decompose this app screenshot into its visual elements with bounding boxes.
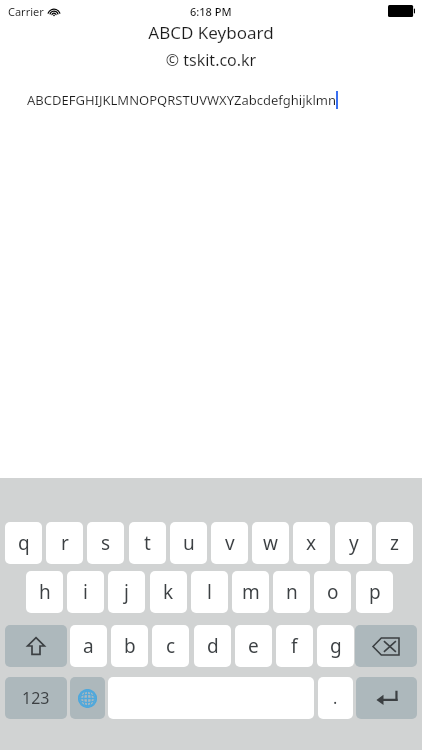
staticText: d	[207, 633, 219, 659]
staticText: h	[39, 579, 51, 605]
staticText: s	[101, 530, 111, 556]
button[interactable]: y	[335, 522, 372, 564]
button[interactable]: w	[252, 522, 289, 564]
button[interactable]: n	[273, 571, 310, 613]
staticText: a	[83, 633, 94, 659]
staticText: f	[291, 633, 298, 659]
staticText: x	[306, 530, 317, 556]
button[interactable]: s	[87, 522, 124, 564]
button[interactable]: .	[318, 677, 353, 719]
staticText: 6:18 PM	[190, 4, 232, 19]
staticText: m	[242, 579, 260, 605]
button[interactable]: l	[191, 571, 228, 613]
staticText: 123	[22, 687, 50, 709]
staticText: c	[166, 633, 176, 659]
button[interactable]: Next keyboard	[70, 677, 105, 719]
button[interactable]: o	[314, 571, 351, 613]
staticText: o	[327, 579, 339, 605]
staticText: j	[124, 579, 129, 605]
staticText: u	[183, 530, 195, 556]
button[interactable]: Numbers	[5, 677, 67, 719]
button[interactable]: m	[232, 571, 269, 613]
staticText: b	[124, 633, 136, 659]
staticText: ABCD Keyboard	[0, 21, 422, 44]
button[interactable]: u	[170, 522, 207, 564]
staticText: i	[83, 579, 88, 605]
staticText: © tskit.co.kr	[0, 49, 422, 71]
button[interactable]: b	[111, 625, 148, 667]
staticText: q	[18, 530, 30, 556]
staticText: z	[390, 530, 399, 556]
staticText: n	[286, 579, 298, 605]
staticText: r	[61, 530, 69, 556]
button[interactable]: Shift	[5, 625, 67, 667]
button[interactable]: x	[293, 522, 330, 564]
button[interactable]: t	[129, 522, 166, 564]
button[interactable]: g	[317, 625, 354, 667]
button[interactable]: e	[235, 625, 272, 667]
staticText: e	[248, 633, 259, 659]
button[interactable]: Return	[356, 677, 417, 719]
staticText: g	[330, 633, 342, 659]
staticText: Carrier	[8, 4, 44, 19]
button[interactable]: a	[70, 625, 107, 667]
staticText: p	[369, 579, 381, 605]
staticText: .	[333, 687, 338, 709]
staticText: y	[349, 530, 359, 556]
button[interactable]: p	[356, 571, 393, 613]
button[interactable]: h	[26, 571, 63, 613]
button[interactable]: v	[211, 522, 248, 564]
staticText: l	[207, 579, 212, 605]
button[interactable]: q	[5, 522, 42, 564]
button[interactable]: j	[108, 571, 145, 613]
button[interactable]: i	[67, 571, 104, 613]
staticText: t	[144, 530, 151, 556]
staticText: k	[163, 579, 174, 605]
button[interactable]: Backspace	[355, 625, 417, 667]
staticText: v	[225, 530, 235, 556]
button[interactable]: c	[152, 625, 189, 667]
button[interactable]: k	[150, 571, 187, 613]
button[interactable]: r	[46, 522, 83, 564]
button[interactable]: d	[194, 625, 231, 667]
staticText: w	[263, 530, 278, 556]
button[interactable]: z	[376, 522, 413, 564]
staticText: ABCDEFGHIJKLMNOPQRSTUVWXYZabcdefghijklmn	[27, 91, 336, 109]
button[interactable]: f	[276, 625, 313, 667]
